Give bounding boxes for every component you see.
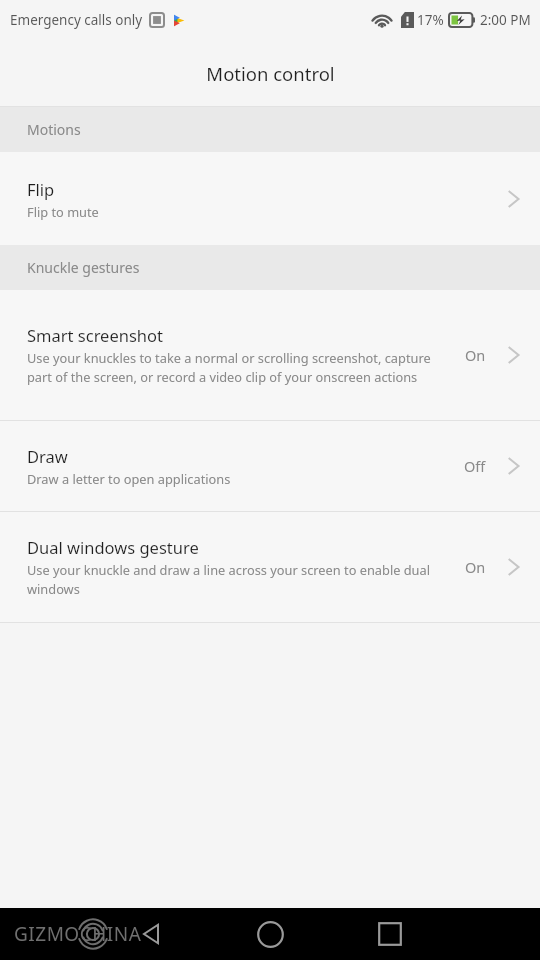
staticText: Motions (27, 120, 81, 139)
staticText: Emergency calls only (10, 11, 143, 29)
staticText: Use your knuckle and draw a line across … (27, 561, 453, 598)
staticText: Flip (27, 178, 55, 200)
staticText: Use your knuckles to take a normal or sc… (27, 349, 453, 386)
button[interactable]: Recent apps (364, 908, 416, 960)
button[interactable]: Flip (0, 152, 540, 245)
staticText: Motion control (206, 61, 335, 86)
staticText: GIZMOCHINA (14, 921, 142, 947)
button[interactable]: Back (128, 910, 176, 958)
staticText: Flip to mute (27, 203, 99, 220)
staticText: Draw (27, 445, 68, 467)
staticText: On (465, 345, 486, 365)
staticText: Knuckle gestures (27, 258, 140, 277)
button[interactable]: Draw (0, 421, 540, 511)
staticText: 2:00 PM (480, 11, 531, 29)
staticText: On (465, 557, 486, 577)
staticText: Off (464, 456, 486, 476)
button[interactable]: Smart screenshot (0, 290, 540, 420)
button[interactable]: Dual windows gesture (0, 512, 540, 622)
staticText: Dual windows gesture (27, 536, 199, 558)
button[interactable]: Home (244, 908, 296, 960)
staticText: Smart screenshot (27, 324, 163, 346)
staticText: 17% (417, 11, 444, 29)
staticText: Draw a letter to open applications (27, 470, 231, 487)
